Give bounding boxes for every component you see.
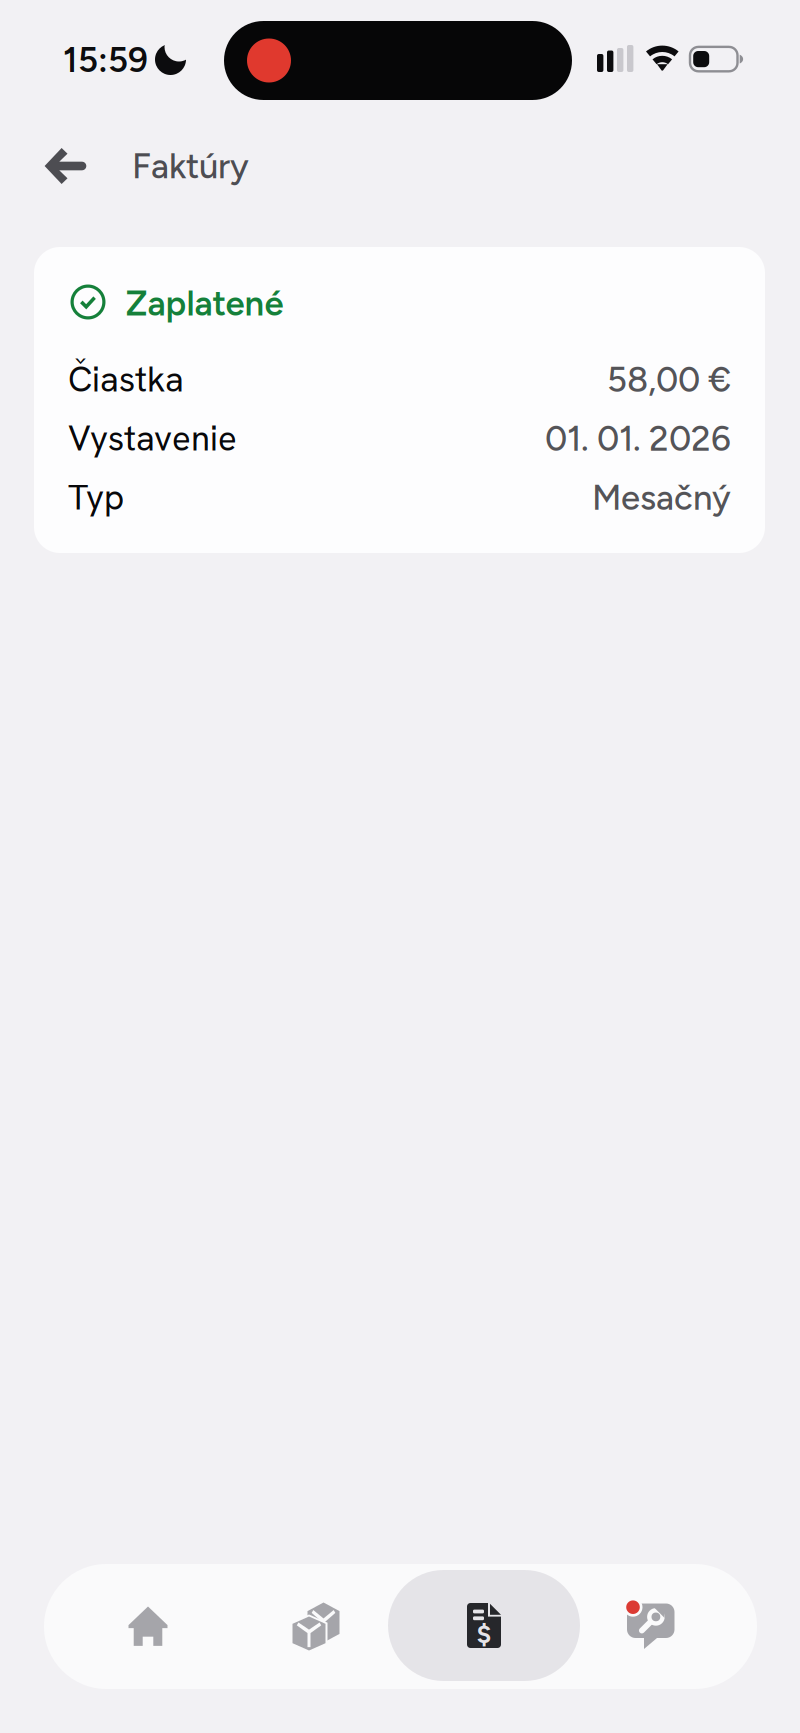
button[interactable]: Produkty (232, 1564, 400, 1689)
staticText: Typ (68, 475, 124, 520)
button[interactable]: Podpora (567, 1564, 735, 1689)
button[interactable]: Faktúry (388, 1570, 580, 1681)
staticText: $ (476, 1618, 491, 1650)
staticText: Mesačný (592, 477, 731, 518)
button[interactable]: Späť (33, 134, 97, 198)
staticText: 01. 01. 2026 (545, 418, 731, 459)
staticText: Vystavenie (68, 416, 237, 461)
staticText: 58,00 € (607, 359, 731, 400)
staticText: Čiastka (68, 357, 184, 402)
button[interactable]: Domov (64, 1564, 232, 1689)
staticText: 15:59 (63, 39, 148, 81)
staticText: Faktúry (132, 145, 249, 187)
staticText: Zaplatené (125, 282, 283, 324)
